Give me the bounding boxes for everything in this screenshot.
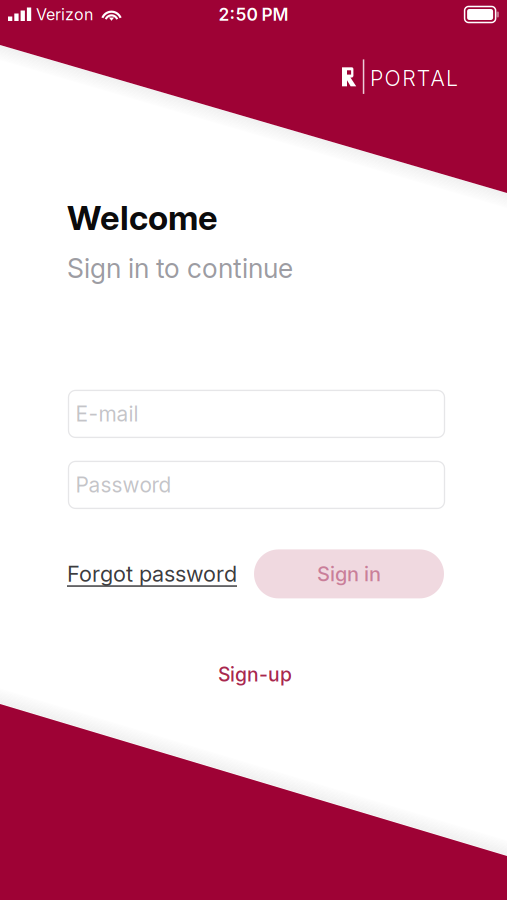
button[interactable]: Forgot password	[67, 549, 237, 598]
staticText: Forgot password	[67, 561, 237, 587]
staticText: Verizon	[36, 5, 93, 24]
button[interactable]: Sign in	[254, 549, 444, 598]
staticText: E-mail	[75, 401, 138, 426]
staticText: Password	[75, 472, 171, 497]
button[interactable]: Sign-up	[67, 653, 443, 695]
staticText: PORTAL	[370, 65, 458, 91]
staticText: Welcome	[67, 197, 218, 238]
staticText: Sign-up	[218, 663, 292, 686]
staticText: Sign in	[317, 562, 381, 586]
staticText: 2:50 PM	[218, 4, 288, 25]
staticText: Sign in to continue	[67, 252, 293, 284]
